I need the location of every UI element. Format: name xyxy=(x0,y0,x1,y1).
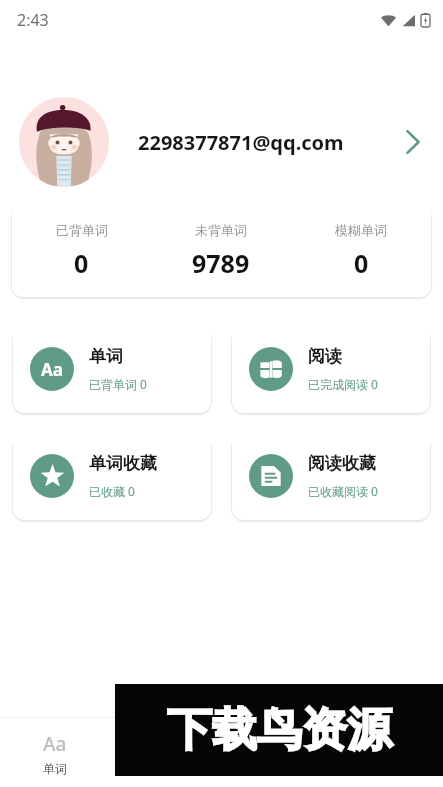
button[interactable]: Aa xyxy=(13,325,211,413)
staticText: 9789 xyxy=(192,246,250,280)
staticText: 已背单词 0 xyxy=(89,376,147,392)
staticText: 下载鸟资源 xyxy=(167,702,392,759)
button[interactable]: Aa xyxy=(0,722,110,784)
staticText: 2298377871@qq.com xyxy=(138,129,344,156)
staticText: 单词收藏 xyxy=(89,453,157,474)
button[interactable]: 2298377871@qq.com xyxy=(0,96,443,188)
staticText: 单词 xyxy=(89,346,123,367)
button[interactable]: 模糊单词 xyxy=(291,214,431,288)
button[interactable]: 单词收藏 xyxy=(13,432,211,520)
staticText: 已收藏 0 xyxy=(89,483,135,499)
staticText: 未背单词 xyxy=(195,222,247,238)
staticText: 已背单词 xyxy=(56,222,108,238)
staticText: Aa xyxy=(43,731,67,757)
staticText: 0 xyxy=(354,246,369,280)
staticText: 2:43 xyxy=(17,9,49,31)
staticText: 已收藏阅读 0 xyxy=(308,483,378,499)
button[interactable]: 未背单词 xyxy=(151,214,291,288)
staticText: 0 xyxy=(74,246,89,280)
staticText: 已完成阅读 0 xyxy=(308,376,378,392)
other: Open profile xyxy=(405,129,421,155)
staticText: 单词 xyxy=(43,761,67,776)
button[interactable]: 已背单词 xyxy=(12,214,151,288)
button[interactable]: 阅读收藏 xyxy=(232,432,430,520)
staticText: Aa xyxy=(41,358,63,381)
staticText: 阅读收藏 xyxy=(308,453,376,474)
staticText: 阅读 xyxy=(308,346,342,367)
staticText: 模糊单词 xyxy=(335,222,387,238)
button[interactable]: 阅读 xyxy=(232,325,430,413)
